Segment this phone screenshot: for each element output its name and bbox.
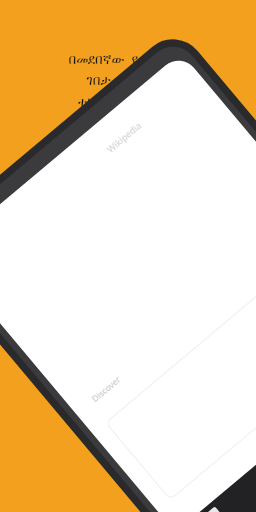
button[interactable]: Amharic keyboard promo xyxy=(0,0,256,512)
